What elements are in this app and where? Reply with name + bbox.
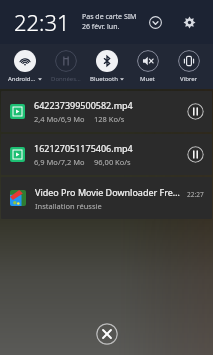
staticText: 2,4 Mo/6,9 Mo <box>34 114 85 124</box>
button[interactable]: Muet <box>127 44 168 89</box>
staticText: 6,9 Mo/7,2 Mo <box>34 157 85 167</box>
button[interactable]: Bluetooth <box>86 44 127 89</box>
staticText: 26 févr. lun. <box>82 22 120 32</box>
button[interactable]: Expand quick settings <box>143 10 167 34</box>
button[interactable]: 162127051175406.mp4 <box>1 134 212 175</box>
staticText: 128 Ko/s <box>94 114 125 124</box>
staticText: Video Pro Movie Downloader Fre… <box>35 186 180 198</box>
button[interactable]: Settings <box>177 10 201 34</box>
button[interactable]: Pause download <box>187 146 204 163</box>
staticText: Vibrer <box>180 75 198 83</box>
staticText: Bluetooth <box>90 75 118 83</box>
staticText: Installation réussie <box>35 201 102 211</box>
staticText: 162127051175406.mp4 <box>34 142 133 154</box>
button[interactable]: Données… <box>45 44 86 89</box>
staticText: 22:31 <box>14 7 70 37</box>
button[interactable]: Android… <box>4 44 45 89</box>
button[interactable]: Pause download <box>187 103 204 120</box>
staticText: 22:27 <box>187 190 204 199</box>
staticText: Android… <box>8 75 36 83</box>
staticText: Données… <box>51 75 81 83</box>
button[interactable]: Video Pro Movie Downloader Fre… <box>1 177 212 219</box>
button[interactable]: Close notifications <box>96 323 118 345</box>
staticText: Pas de carte SIM <box>82 12 137 22</box>
staticText: Muet <box>140 75 155 83</box>
staticText: 642237399500582.mp4 <box>34 99 133 111</box>
button[interactable]: 642237399500582.mp4 <box>1 91 212 132</box>
staticText: 96,00 Ko/s <box>94 157 131 167</box>
button[interactable]: Vibrer <box>168 44 209 89</box>
